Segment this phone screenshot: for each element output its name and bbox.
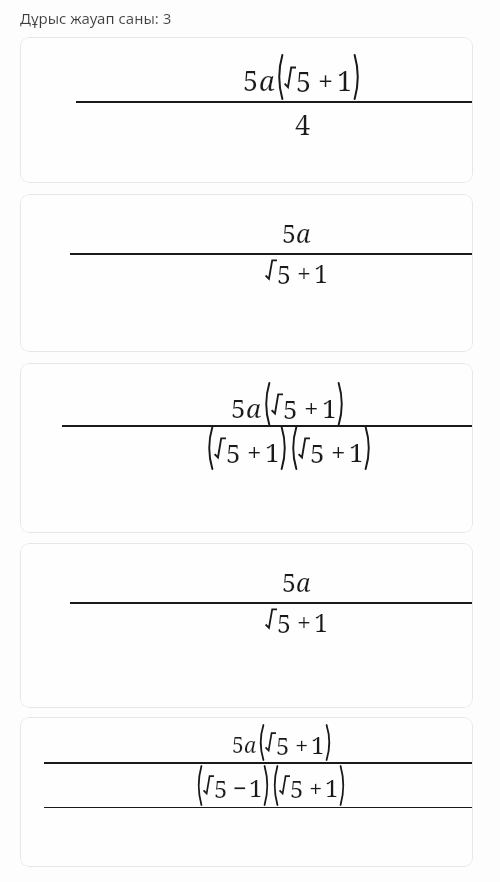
button[interactable]: 5 [20, 363, 473, 533]
staticText: 1 [265, 434, 280, 469]
staticText: 5 [243, 62, 259, 99]
staticText: + [331, 434, 346, 469]
staticText: 5 [276, 729, 290, 762]
staticText: 5 [296, 63, 312, 100]
staticText: 1 [325, 771, 339, 804]
staticText: Дұрыс жауап саны: 3 [20, 8, 172, 28]
staticText: 1 [314, 256, 328, 290]
staticText: 1 [314, 605, 328, 639]
button[interactable]: 5 [20, 717, 473, 867]
staticText: 1 [337, 62, 353, 99]
staticText: 5 [282, 216, 296, 250]
button[interactable]: 5 [20, 194, 473, 352]
staticText: 5 [282, 565, 296, 599]
staticText: + [318, 62, 334, 99]
staticText: + [295, 728, 309, 761]
staticText: 5 [231, 390, 246, 425]
staticText: a [244, 731, 257, 760]
staticText: 5 [232, 731, 244, 760]
staticText: a [296, 216, 311, 250]
staticText: 1 [249, 771, 263, 804]
staticText: 5 [277, 257, 291, 291]
staticText: − [233, 771, 247, 804]
staticText: 5 [290, 772, 304, 805]
button[interactable]: 5 [20, 37, 473, 183]
staticText: + [297, 256, 311, 290]
staticText: a [296, 565, 311, 599]
staticText: 5 [226, 435, 241, 470]
staticText: a [259, 62, 275, 99]
staticText: 1 [322, 390, 337, 425]
staticText: + [304, 390, 319, 425]
staticText: 5 [310, 435, 325, 470]
staticText: + [309, 771, 323, 804]
staticText: 5 [283, 391, 298, 426]
staticText: + [247, 434, 262, 469]
staticText: 4 [295, 106, 311, 143]
button[interactable]: 5 [20, 543, 473, 708]
staticText: a [246, 390, 262, 425]
staticText: 5 [277, 606, 291, 640]
staticText: 1 [349, 434, 364, 469]
staticText: 5 [214, 772, 228, 805]
staticText: 1 [311, 728, 325, 761]
staticText: + [297, 605, 311, 639]
